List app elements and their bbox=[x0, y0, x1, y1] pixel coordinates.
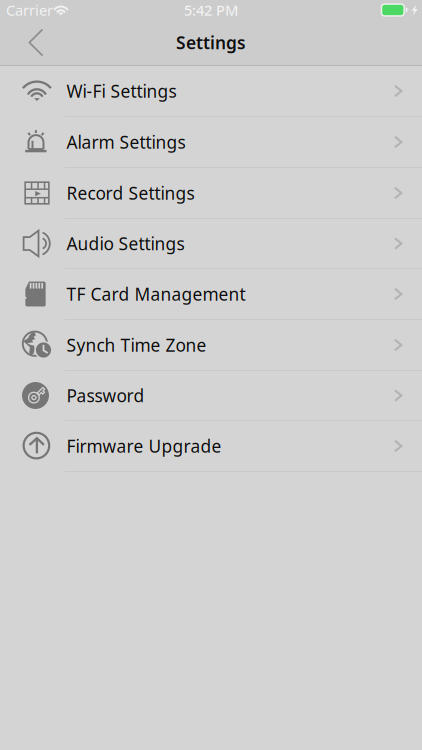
button[interactable]: Alarm Settings bbox=[0, 117, 422, 168]
button[interactable]: Record Settings bbox=[0, 168, 422, 219]
button[interactable]: Firmware Upgrade bbox=[0, 421, 422, 472]
staticText: Record Settings bbox=[66, 181, 194, 204]
staticText: Password bbox=[66, 384, 144, 407]
button[interactable]: Audio Settings bbox=[0, 219, 422, 269]
staticText: Alarm Settings bbox=[66, 130, 185, 153]
staticText: Synch Time Zone bbox=[66, 333, 206, 356]
staticText: Audio Settings bbox=[66, 232, 184, 255]
button[interactable]: Password bbox=[0, 371, 422, 421]
button[interactable]: TF Card Management bbox=[0, 269, 422, 320]
staticText: Settings bbox=[176, 31, 246, 54]
staticText: Wi-Fi Settings bbox=[66, 79, 176, 102]
staticText: 5:42 PM bbox=[184, 0, 238, 20]
staticText: TF Card Management bbox=[66, 282, 245, 305]
button[interactable]: Wi-Fi Settings bbox=[0, 66, 422, 117]
button[interactable]: Synch Time Zone bbox=[0, 320, 422, 371]
staticText: Firmware Upgrade bbox=[66, 434, 221, 457]
button[interactable]: Back bbox=[0, 20, 57, 64]
staticText: Carrier bbox=[6, 0, 53, 20]
